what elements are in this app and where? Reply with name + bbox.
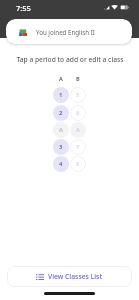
other: Classroom	[19, 28, 27, 36]
other: Signal, wifi and battery	[104, 3, 129, 10]
button[interactable]: A	[53, 122, 69, 138]
button[interactable]: 3	[53, 139, 69, 155]
staticText: View Classes List	[48, 272, 103, 281]
staticText: 8	[76, 160, 80, 168]
button[interactable]: 1	[53, 87, 69, 103]
staticText: 3	[59, 143, 63, 151]
staticText: 7:55	[16, 3, 31, 13]
button[interactable]: 7	[70, 139, 86, 155]
button[interactable]: A	[70, 122, 86, 138]
button[interactable]: 5	[70, 87, 86, 103]
staticText: 2	[59, 109, 63, 117]
button[interactable]: 2	[53, 105, 69, 121]
button[interactable]: Classroom	[6, 19, 132, 44]
staticText: 6	[76, 109, 80, 117]
button[interactable]: View Classes List	[7, 266, 132, 287]
staticText: Tap a period to add or edit a class	[16, 55, 124, 64]
staticText: A	[76, 126, 81, 134]
staticText: 4	[59, 160, 63, 168]
button[interactable]: 8	[70, 156, 86, 172]
button[interactable]: 4	[53, 156, 69, 172]
staticText: B	[76, 75, 80, 82]
staticText: 7	[76, 143, 80, 151]
staticText: 1	[59, 91, 63, 99]
button[interactable]: 6	[70, 105, 86, 121]
staticText: A	[59, 126, 64, 134]
staticText: 5	[76, 91, 80, 99]
staticText: A	[59, 75, 63, 82]
staticText: You joined English II	[36, 28, 95, 36]
